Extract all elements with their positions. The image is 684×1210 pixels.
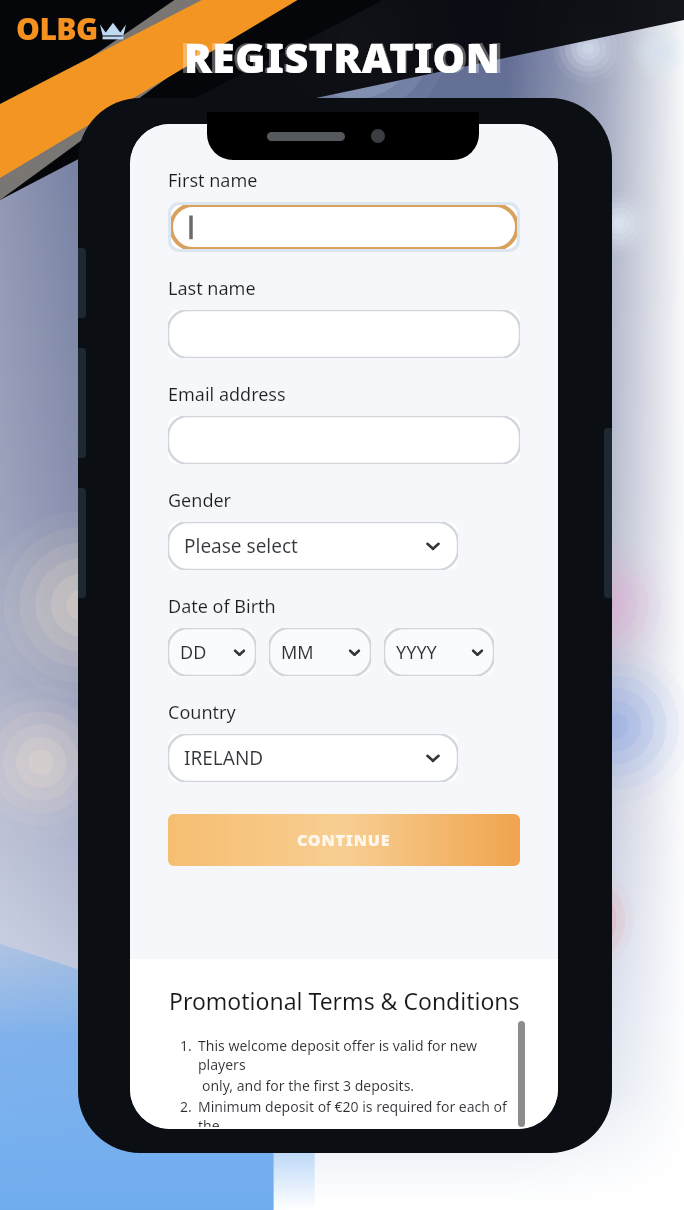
button[interactable] bbox=[168, 310, 520, 358]
button[interactable]: DD bbox=[168, 628, 256, 676]
staticText: 2. bbox=[180, 1097, 192, 1116]
button[interactable]: MM bbox=[269, 628, 371, 676]
staticText: Minimum deposit of €20 is required for e… bbox=[198, 1097, 522, 1127]
staticText: IRELAND bbox=[184, 745, 264, 771]
staticText: SIGN UP bbox=[297, 124, 391, 154]
staticText: Gender bbox=[168, 488, 232, 513]
staticText: DD bbox=[180, 640, 207, 665]
button[interactable]: CONTINUE bbox=[168, 814, 520, 866]
staticText: YYYY bbox=[396, 640, 437, 665]
button[interactable]: YYYY bbox=[384, 628, 494, 676]
button[interactable]: Please select bbox=[168, 522, 458, 570]
staticText: This welcome deposit offer is valid for … bbox=[198, 1036, 522, 1074]
staticText: First name bbox=[168, 168, 258, 193]
staticText: MM bbox=[281, 640, 314, 665]
staticText: Promotional Terms & Conditions bbox=[169, 985, 520, 1016]
staticText: CONTINUE bbox=[297, 829, 391, 851]
staticText: Please select bbox=[184, 533, 298, 559]
staticText: 1. bbox=[180, 1036, 192, 1055]
staticText: OLBG bbox=[16, 8, 98, 49]
staticText: Email address bbox=[168, 382, 286, 407]
staticText: only, and for the first 3 deposits. bbox=[202, 1076, 415, 1095]
button[interactable] bbox=[171, 205, 517, 249]
staticText: Date of Birth bbox=[168, 594, 276, 619]
button[interactable]: IRELAND bbox=[168, 734, 458, 782]
staticText: REGISTRATION bbox=[180, 28, 504, 85]
staticText: Last name bbox=[168, 276, 256, 301]
staticText: REGISTRATION bbox=[184, 29, 501, 85]
button[interactable] bbox=[168, 416, 520, 464]
staticText: Country bbox=[168, 700, 236, 725]
